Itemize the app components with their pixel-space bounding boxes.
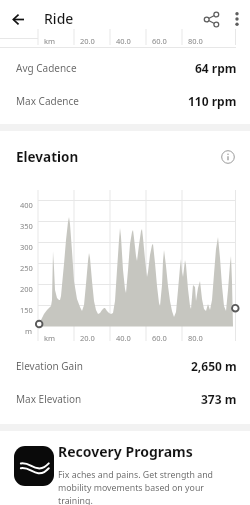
button[interactable]: Max Cadence bbox=[0, 84, 250, 117]
staticText: 20.0 bbox=[80, 333, 95, 343]
staticText: 80.0 bbox=[188, 36, 203, 46]
button[interactable]: Elevation Gain bbox=[0, 349, 250, 382]
staticText: 60.0 bbox=[152, 36, 167, 46]
staticText: 60.0 bbox=[152, 333, 167, 343]
staticText: Elevation Gain bbox=[16, 359, 83, 373]
staticText: 250 bbox=[20, 263, 33, 273]
staticText: 80.0 bbox=[188, 333, 203, 343]
staticText: Ride bbox=[44, 9, 74, 28]
button[interactable]: Share bbox=[197, 5, 225, 33]
staticText: 373 m bbox=[201, 391, 237, 407]
staticText: Avg Cadence bbox=[16, 61, 77, 75]
staticText: Max Elevation bbox=[16, 392, 82, 406]
staticText: 150 bbox=[20, 305, 33, 315]
staticText: 350 bbox=[20, 221, 33, 231]
staticText: 300 bbox=[20, 242, 33, 252]
button[interactable]: More options bbox=[223, 5, 250, 33]
button[interactable]: Max Elevation bbox=[0, 382, 250, 415]
button[interactable]: Back bbox=[4, 5, 32, 33]
staticText: Fix aches and pains. Get strength and mo… bbox=[58, 469, 223, 505]
button[interactable]: Avg Cadence bbox=[0, 51, 250, 84]
staticText: Max Cadence bbox=[16, 94, 79, 108]
button[interactable]: Info bbox=[218, 147, 238, 167]
staticText: Elevation bbox=[16, 148, 79, 166]
staticText: 20.0 bbox=[80, 36, 95, 46]
staticText: 200 bbox=[20, 284, 33, 294]
staticText: km bbox=[44, 36, 56, 46]
staticText: Recovery Programs bbox=[58, 442, 193, 461]
staticText: 40.0 bbox=[116, 333, 131, 343]
staticText: 110 rpm bbox=[188, 93, 237, 109]
staticText: 64 rpm bbox=[195, 60, 237, 76]
button[interactable]: Recovery Programs bbox=[0, 442, 250, 505]
staticText: m bbox=[25, 326, 33, 336]
staticText: 40.0 bbox=[116, 36, 131, 46]
staticText: 2,650 m bbox=[191, 358, 237, 374]
staticText: km bbox=[44, 333, 56, 343]
staticText: 400 bbox=[20, 200, 33, 210]
